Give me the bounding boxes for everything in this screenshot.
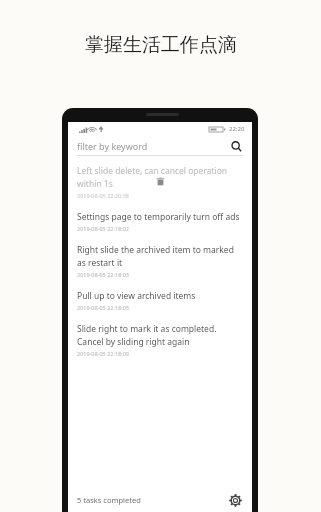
staticText: 2019-08-05 22:18:02 [77, 225, 129, 232]
staticText: Settings page to temporarily turn off ad… [77, 211, 240, 223]
staticText: Slide right to mark it as completed. Can… [77, 323, 243, 348]
staticText: 2019-08-05 22:18:09 [77, 350, 129, 357]
staticText: Pull up to view archived items [77, 290, 196, 302]
other: Search [229, 139, 243, 153]
button[interactable]: Settings [227, 492, 243, 508]
button[interactable]: Left slide delete, can cancel operation … [77, 165, 243, 199]
button[interactable]: Right slide the archived item to marked … [77, 244, 243, 278]
staticText: Left slide delete, can cancel operation … [77, 165, 243, 190]
button[interactable]: filter by keyword [77, 136, 243, 155]
other: Delete [155, 176, 165, 186]
staticText: Right slide the archived item to marked … [77, 244, 243, 269]
button[interactable]: Pull up to view archived items [77, 290, 243, 311]
staticText: 2019-08-05 22:20:38 [77, 192, 129, 199]
staticText: filter by keyword [77, 140, 148, 152]
staticText: 22:20 [229, 125, 245, 133]
staticText: 5 tasks completed [77, 495, 141, 505]
button[interactable]: Settings page to temporarily turn off ad… [77, 211, 243, 232]
staticText: 2019-08-05 22:18:03 [77, 271, 129, 278]
button[interactable]: Slide right to mark it as completed. Can… [77, 323, 243, 357]
staticText: 2019-08-05 22:18:05 [77, 304, 129, 311]
staticText: 掌握生活工作点滴 [85, 33, 237, 57]
